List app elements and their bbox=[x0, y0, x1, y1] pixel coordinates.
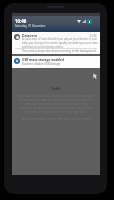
button[interactable]: USB mass storage enabled bbox=[12, 56, 100, 68]
staticText: 10:46 bbox=[90, 34, 97, 38]
button[interactable]: Dalavera bbox=[12, 32, 100, 54]
staticText: Edit bbox=[52, 86, 61, 92]
staticText: This service keeps the device running in… bbox=[22, 49, 97, 53]
staticText: USB mass storage enabled bbox=[22, 58, 64, 62]
staticText: Touch to disable USB storage bbox=[22, 62, 61, 66]
button[interactable]: Clear all notifications bbox=[92, 73, 98, 79]
staticText: A collection of tools that let you adjus… bbox=[22, 37, 100, 49]
staticText: 10:46 bbox=[15, 18, 27, 24]
staticText: An advanced tool for the best experience… bbox=[21, 116, 92, 121]
button[interactable]: Settings bbox=[87, 19, 92, 24]
staticText: Dalavera bbox=[22, 33, 37, 38]
staticText: Saturday, 27 December bbox=[15, 24, 46, 28]
staticText: This app allows you to make edits to how… bbox=[17, 93, 95, 114]
